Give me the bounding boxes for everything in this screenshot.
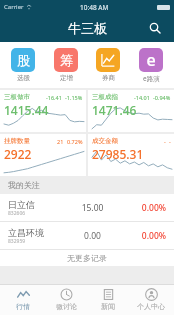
staticText: 27985.31 <box>92 146 144 162</box>
staticText: 15.00 <box>68 202 117 214</box>
staticText: -0.94% <box>153 94 171 101</box>
button[interactable]: e <box>131 47 171 84</box>
staticText: 成交金额 <box>92 137 118 145</box>
staticText: -14.01 <box>134 94 150 101</box>
button[interactable]: 三板做市 <box>0 90 86 132</box>
button[interactable]: 股 <box>3 47 43 83</box>
staticText: 行情 <box>16 302 30 311</box>
staticText: 牛三板 <box>68 20 107 36</box>
staticText: 股 <box>17 52 30 68</box>
staticText: Carrier <box>4 3 24 11</box>
button[interactable]: 券商 <box>88 47 128 83</box>
button[interactable]: 挂牌数量 <box>0 134 86 176</box>
button[interactable]: 行情 <box>3 285 43 315</box>
button[interactable]: Search <box>144 17 166 39</box>
staticText: 0.72% <box>67 138 83 145</box>
staticText: 0.00% <box>117 202 166 214</box>
staticText: -16.41 <box>46 94 62 101</box>
staticText: 微讨论 <box>56 302 77 311</box>
staticText: 日立信 <box>8 199 35 210</box>
button[interactable]: 日立信 <box>0 194 174 221</box>
staticText: 1415.44 <box>4 102 49 118</box>
button[interactable]: 立昌环境 <box>0 222 174 249</box>
button[interactable]: 筹 <box>46 47 86 83</box>
staticText: - <box>164 138 166 145</box>
staticText: 832606 <box>8 210 26 217</box>
staticText: 0.00% <box>117 230 166 242</box>
staticText: 新闻 <box>101 302 115 311</box>
staticText: 选股 <box>17 74 30 82</box>
staticText: 挂牌数量 <box>4 137 30 145</box>
staticText: 筹 <box>60 52 73 68</box>
staticText: 三板成指 <box>92 93 118 101</box>
staticText: 无更多记录 <box>67 253 107 263</box>
button[interactable]: 个人中心 <box>131 285 171 315</box>
button[interactable]: 成交金额 <box>88 134 174 176</box>
staticText: 立昌环境 <box>8 227 44 238</box>
staticText: 我的关注 <box>8 180 40 190</box>
staticText: e <box>146 49 156 71</box>
staticText: - <box>169 138 171 145</box>
staticText: 个人中心 <box>137 302 165 311</box>
staticText: 1471.46 <box>92 102 137 118</box>
staticText: 10:48 AM <box>80 3 109 12</box>
staticText: 定增 <box>60 74 73 82</box>
staticText: 三板做市 <box>4 93 30 101</box>
staticText: e路演 <box>143 74 160 83</box>
staticText: -1.15% <box>65 94 83 101</box>
button[interactable]: 三板成指 <box>88 90 174 132</box>
staticText: 2922 <box>4 146 32 162</box>
button[interactable]: 新闻 <box>88 285 128 315</box>
button[interactable]: 微讨论 <box>46 285 86 315</box>
staticText: 0.00 <box>68 230 117 242</box>
staticText: 832959 <box>8 238 26 245</box>
staticText: 券商 <box>102 74 115 82</box>
staticText: 21 <box>57 138 64 145</box>
